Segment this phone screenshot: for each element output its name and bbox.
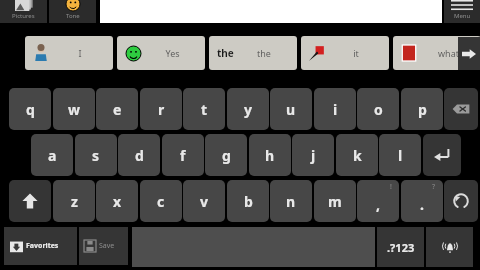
button[interactable]: Save (79, 227, 128, 265)
button[interactable]: w (53, 88, 95, 130)
staticText: f (180, 146, 186, 165)
button[interactable]: i (314, 88, 356, 130)
button[interactable]: Shift (9, 180, 51, 222)
button[interactable]: Undo (444, 180, 478, 222)
staticText: Pictures (12, 12, 35, 20)
staticText: h (265, 146, 275, 165)
staticText: Save (99, 241, 115, 251)
staticText: I (78, 47, 82, 59)
button[interactable]: g (205, 134, 247, 176)
button[interactable]: c (140, 180, 182, 222)
button[interactable]: Sound (426, 227, 473, 267)
staticText: Favorites (26, 241, 59, 251)
staticText: x (113, 192, 122, 211)
button[interactable]: Backspace (444, 88, 478, 130)
staticText: Menu (454, 12, 471, 20)
staticText: w (68, 100, 80, 119)
button[interactable]: j (292, 134, 334, 176)
staticText: m (328, 192, 342, 211)
staticText: z (71, 192, 78, 211)
button[interactable]: u (270, 88, 312, 130)
staticText: the (217, 46, 234, 60)
staticText: c (157, 192, 165, 211)
staticText: the (257, 47, 271, 59)
staticText: j (311, 146, 316, 165)
button[interactable]: z (53, 180, 95, 222)
button[interactable]: x (96, 180, 138, 222)
button[interactable]: p (401, 88, 443, 130)
button[interactable]: a (31, 134, 73, 176)
button[interactable]: ? (401, 180, 443, 222)
staticText: e (113, 100, 122, 119)
staticText: g (222, 146, 231, 165)
button[interactable]: b (227, 180, 269, 222)
button[interactable]: v (183, 180, 225, 222)
button[interactable]: Enter (423, 134, 461, 176)
staticText: d (135, 146, 144, 165)
button[interactable]: what (393, 36, 480, 70)
button[interactable]: I (25, 36, 113, 70)
button[interactable]: Pictures (0, 0, 47, 23)
staticText: Yes (165, 47, 180, 59)
button[interactable]: More suggestions (458, 37, 480, 70)
staticText: b (244, 192, 253, 211)
button[interactable]: e (96, 88, 138, 130)
staticText: a (48, 146, 57, 165)
button[interactable]: q (9, 88, 51, 130)
button[interactable]: Menu (444, 0, 480, 23)
button[interactable]: o (357, 88, 399, 130)
staticText: n (286, 192, 296, 211)
staticText: y (244, 100, 252, 119)
staticText: , (376, 195, 380, 214)
staticText: . (420, 195, 424, 214)
button[interactable]: d (118, 134, 160, 176)
staticText: l (398, 146, 403, 165)
staticText: u (286, 100, 296, 119)
button[interactable]: Favorites (4, 227, 77, 265)
staticText: v (200, 192, 208, 211)
button[interactable]: t (183, 88, 225, 130)
button[interactable]: Yes (117, 36, 205, 70)
staticText: t (201, 100, 208, 119)
button[interactable]: s (75, 134, 117, 176)
button[interactable]: r (140, 88, 182, 130)
staticText: r (158, 100, 165, 119)
button[interactable]: .?123 (377, 227, 424, 267)
staticText: q (26, 100, 35, 119)
staticText: ! (390, 182, 392, 192)
button[interactable]: h (249, 134, 291, 176)
staticText: k (353, 146, 362, 165)
button[interactable]: m (314, 180, 356, 222)
button[interactable]: y (227, 88, 269, 130)
staticText: what (438, 47, 459, 59)
button[interactable]: k (336, 134, 378, 176)
staticText: it (353, 47, 359, 59)
button[interactable]: l (379, 134, 421, 176)
button[interactable]: f (162, 134, 204, 176)
staticText: o (374, 100, 383, 119)
staticText: Tone (66, 12, 80, 20)
staticText: ? (432, 182, 436, 192)
button[interactable]: the (209, 36, 297, 70)
staticText: s (92, 146, 100, 165)
button[interactable]: Tone (49, 0, 96, 23)
staticText: p (418, 100, 427, 119)
button[interactable]: ! (357, 180, 399, 222)
button[interactable]: it (301, 36, 389, 70)
staticText: .?123 (387, 240, 415, 255)
staticText: i (333, 100, 338, 119)
button[interactable]: n (270, 180, 312, 222)
